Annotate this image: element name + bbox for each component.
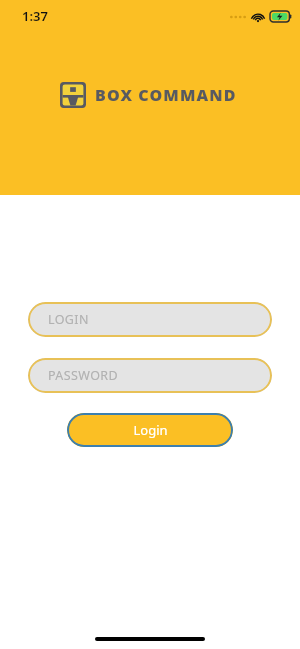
staticText: 1:37 [22,7,48,25]
button[interactable]: Login [67,413,233,447]
staticText: LOGIN [48,311,89,328]
staticText: BOX COMMAND [95,84,237,106]
button[interactable]: PASSWORD [28,358,272,393]
button[interactable]: LOGIN [28,302,272,337]
staticText: PASSWORD [48,367,119,384]
staticText: Login [133,421,168,439]
